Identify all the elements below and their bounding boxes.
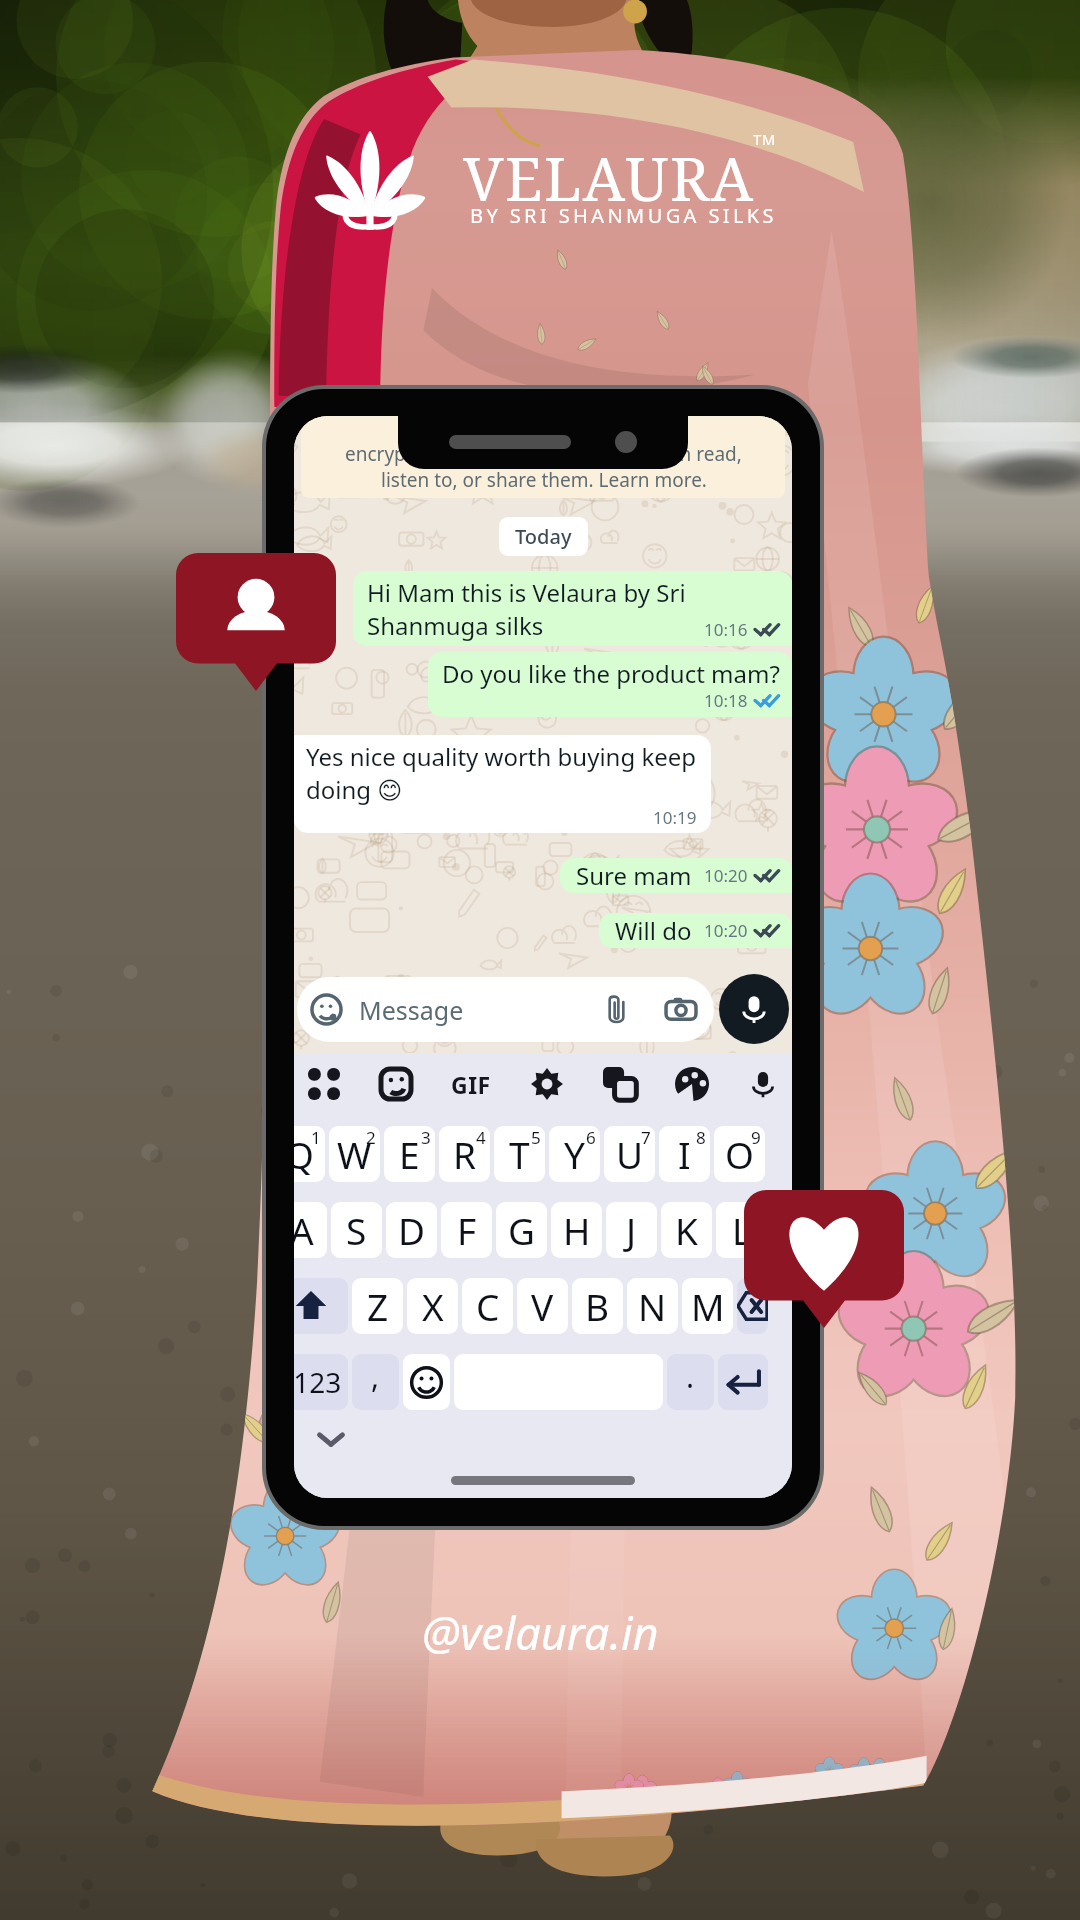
button[interactable]: D [386,1202,437,1258]
button[interactable]: N [627,1278,678,1334]
button[interactable]: Voice message [719,974,789,1044]
staticText: 2 [366,1126,376,1149]
button[interactable]: Sure mam [560,858,792,893]
staticText: Shanmuga silks [367,609,544,642]
button[interactable]: Message [297,977,714,1042]
button[interactable]: ?123 [294,1354,348,1410]
staticText: Will do [615,914,692,947]
staticText: L [732,1205,752,1255]
button[interactable]: Y [549,1126,600,1182]
button[interactable]: Stickers [379,1067,413,1101]
staticText: BY SRI SHANMUGA SILKS [470,202,777,229]
button[interactable]: Today [499,517,588,556]
staticText: S [346,1205,367,1255]
staticText: B [585,1281,610,1331]
staticText: 1 [311,1126,321,1149]
staticText: doing 😊 [306,773,403,806]
staticText: J [626,1205,637,1255]
button[interactable]: Translate [603,1067,637,1101]
button[interactable]: B [572,1278,623,1334]
staticText: Q [294,1129,314,1179]
button[interactable]: M [682,1278,733,1334]
button[interactable]: Will do [599,913,792,948]
button[interactable]: Enter [718,1354,768,1410]
staticText: encrypted. Only people in this chat can … [345,441,742,467]
button[interactable]: T [494,1126,545,1182]
staticText: X [422,1281,444,1331]
staticText: Z [367,1281,389,1331]
button[interactable]: O [714,1126,765,1182]
button[interactable]: K [661,1202,712,1258]
staticText: 5 [531,1126,541,1149]
button[interactable]: J [606,1202,657,1258]
button[interactable]: Hi Mam this is Velaura by Sri [353,571,792,646]
staticText: VELAURA [463,137,755,219]
button[interactable]: Z [352,1278,403,1334]
staticText: N [638,1281,667,1331]
button[interactable]: GIF [451,1069,491,1100]
staticText: U [616,1129,644,1179]
button[interactable]: I [659,1126,710,1182]
staticText: M [691,1281,725,1331]
button[interactable]: U [604,1126,655,1182]
staticText: Message [359,993,464,1027]
button[interactable]: E [384,1126,435,1182]
staticText: 3 [421,1126,431,1149]
button[interactable]: X [407,1278,458,1334]
staticText: Do you like the product mam? [442,657,780,690]
staticText: TM [753,129,776,149]
staticText: V [531,1281,554,1331]
button[interactable]: Q [294,1126,325,1182]
button[interactable]: R [439,1126,490,1182]
button[interactable]: H [551,1202,602,1258]
staticText: 10:20 [704,919,748,942]
staticText: C [476,1281,500,1331]
button[interactable]: F [441,1202,492,1258]
button[interactable]: C [462,1278,513,1334]
staticText: ?123 [294,1363,342,1401]
button[interactable]: V [517,1278,568,1334]
button[interactable]: Emoji [403,1354,450,1410]
staticText: W [337,1129,372,1179]
staticText: A [294,1205,314,1255]
button[interactable]: A [294,1202,327,1258]
button[interactable]: L [716,1202,767,1258]
button[interactable]: . [667,1354,714,1410]
button[interactable]: Settings [530,1067,564,1101]
staticText: R [453,1129,477,1179]
staticText: Sure mam [576,859,692,892]
staticText: 10:16 [704,618,748,641]
staticText: 6 [586,1126,596,1149]
button[interactable]: Shift [294,1278,348,1334]
staticText: Today [515,523,572,550]
button[interactable]: Hide keyboard [316,1424,346,1454]
staticText: 4 [476,1126,486,1149]
staticText: 10:18 [704,689,748,712]
button[interactable]: Like [744,1190,904,1328]
staticText: Hi Mam this is Velaura by Sri [367,576,686,609]
button[interactable]: Do you like the product mam? [428,652,792,717]
button[interactable]: Theme [675,1067,709,1101]
button[interactable]: G [496,1202,547,1258]
staticText: 9 [751,1126,761,1149]
button[interactable]: New follower [176,553,336,691]
other: Attach [601,994,632,1025]
button[interactable]: Backspace [737,1278,768,1334]
staticText: listen to, or share them. Learn more. [381,467,707,493]
staticText: , [371,1356,380,1397]
staticText: 7 [641,1126,651,1149]
other: Camera [664,993,698,1027]
staticText: I [678,1129,691,1179]
button[interactable]: Voice input [748,1069,778,1099]
staticText: 10:20 [704,864,748,887]
button[interactable]: S [331,1202,382,1258]
staticText: 10:19 [653,806,697,829]
button[interactable]: W [329,1126,380,1182]
button[interactable]: Yes nice quality worth buying keep [294,735,711,833]
button[interactable]: , [352,1354,399,1410]
staticText: H [563,1205,591,1255]
staticText: K [675,1205,698,1255]
staticText: @velaura.in [422,1602,659,1663]
button[interactable]: Apps [308,1068,340,1100]
